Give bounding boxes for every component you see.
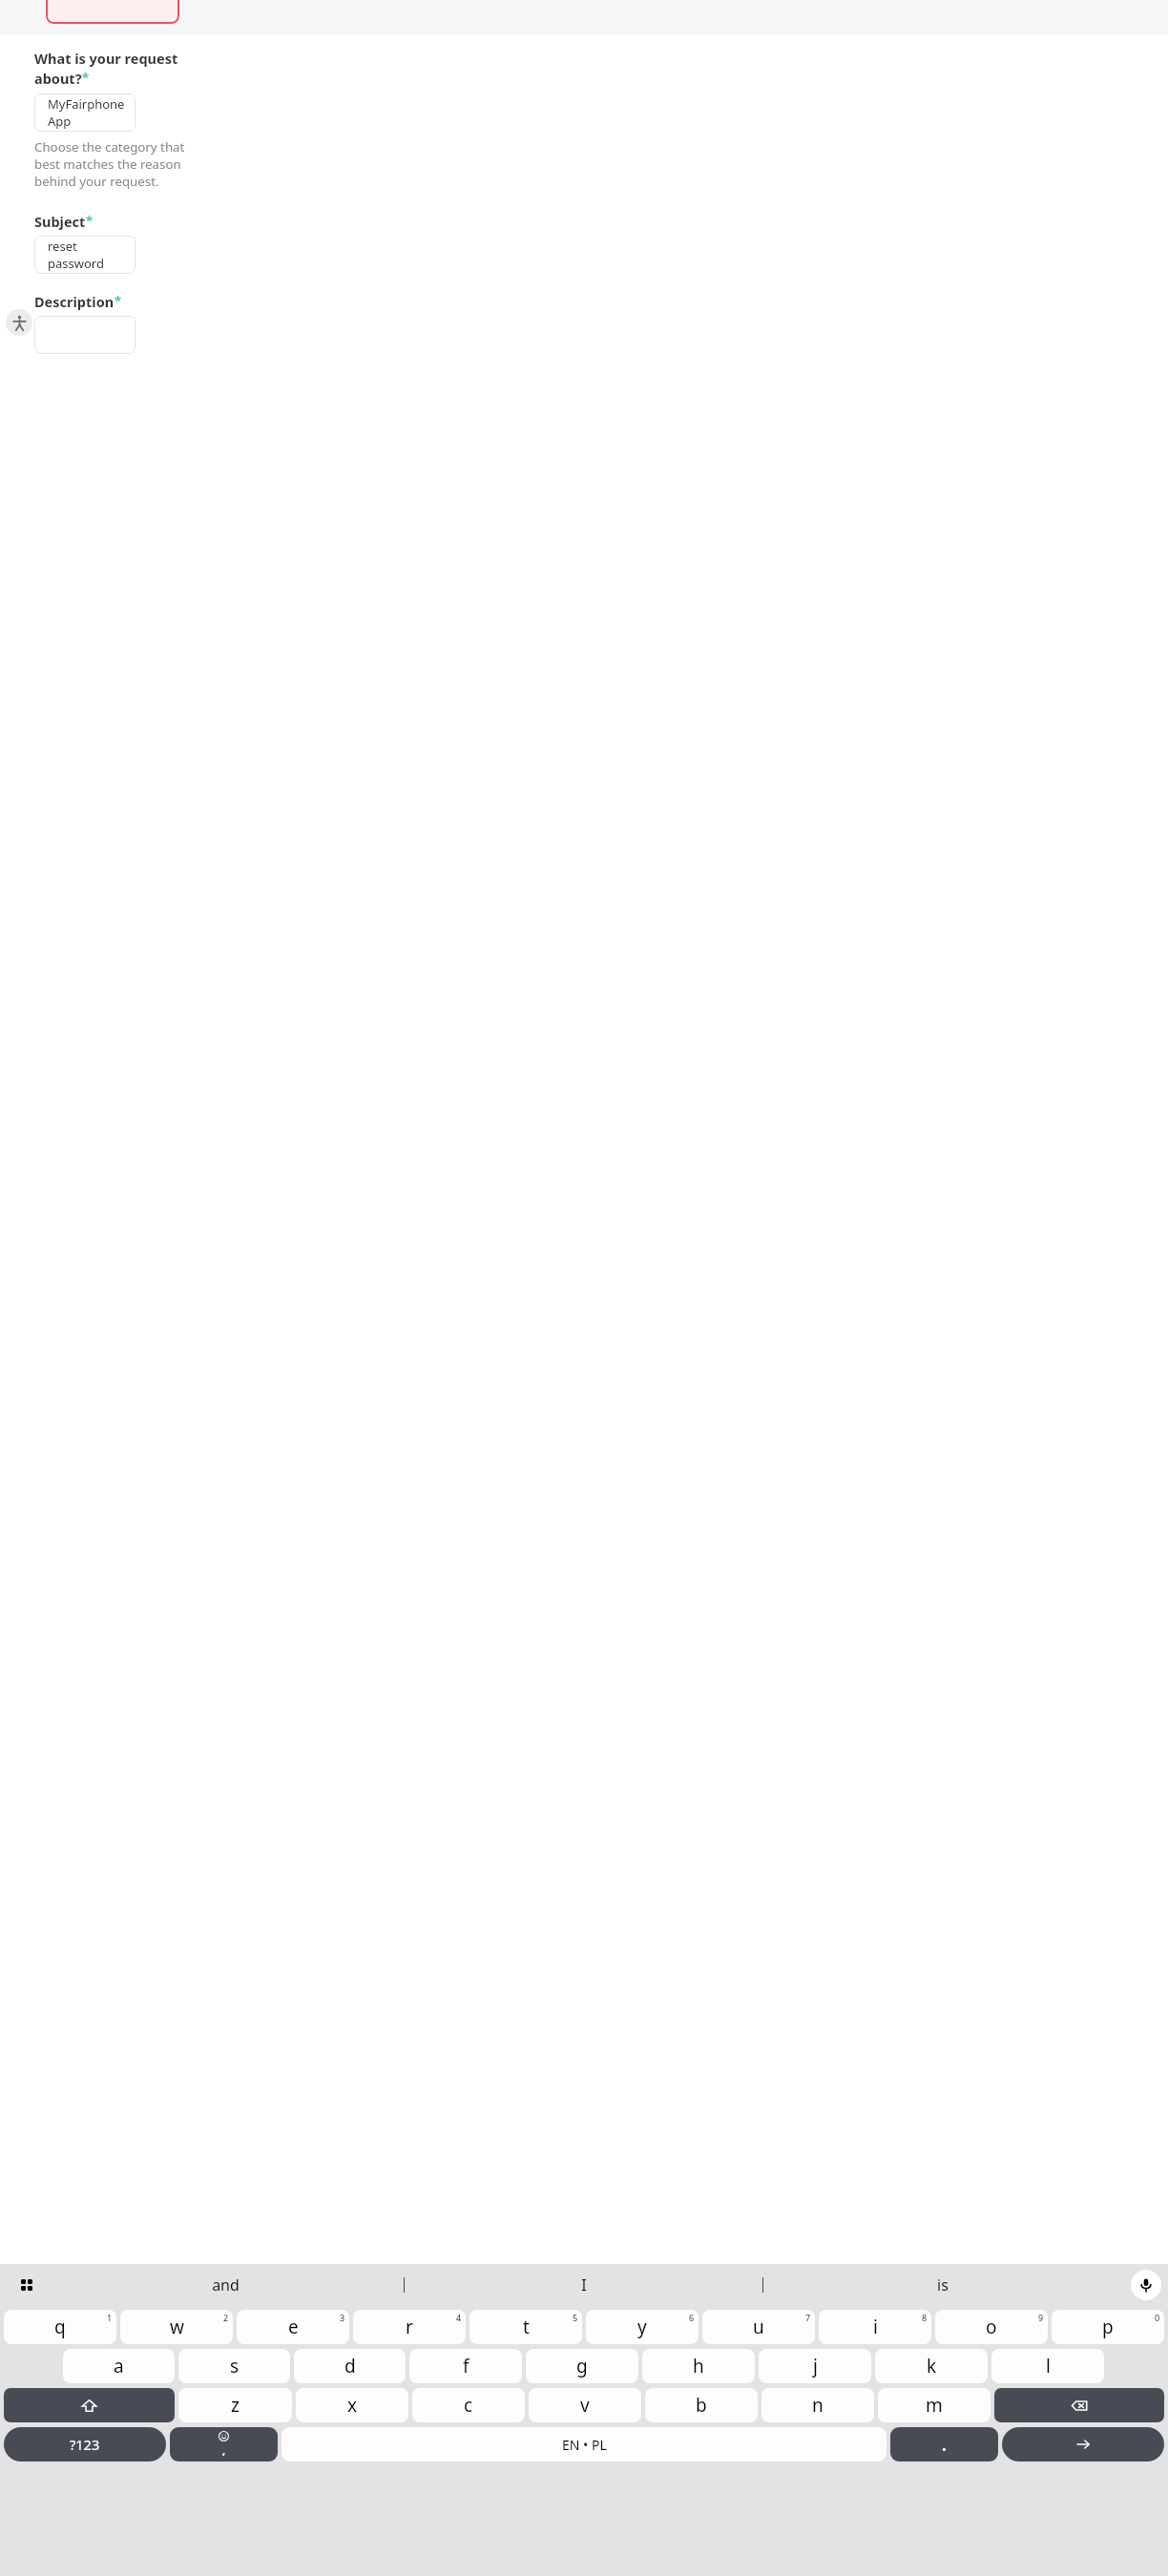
- staticText: s: [230, 2354, 240, 2379]
- staticText: 8: [922, 2312, 928, 2323]
- button[interactable]: is: [763, 2264, 1121, 2305]
- button[interactable]: Emoji: [170, 2427, 278, 2462]
- staticText: m: [926, 2393, 943, 2418]
- button[interactable]: g: [526, 2349, 638, 2383]
- button[interactable]: Period: [890, 2427, 998, 2462]
- button[interactable]: ?123: [4, 2427, 166, 2462]
- button[interactable]: [34, 316, 136, 354]
- staticText: 4: [456, 2312, 462, 2323]
- button[interactable]: d: [294, 2349, 406, 2383]
- button[interactable]: Clipboard: [6, 2264, 47, 2305]
- staticText: ?123: [70, 2435, 100, 2454]
- staticText: i: [873, 2315, 878, 2339]
- button[interactable]: v: [529, 2388, 641, 2422]
- button[interactable]: l: [991, 2349, 1104, 2383]
- staticText: MyFairphone App: [48, 95, 136, 130]
- staticText: k: [927, 2354, 937, 2379]
- button[interactable]: Enter: [1002, 2427, 1164, 2462]
- staticText: a: [114, 2354, 124, 2379]
- staticText: 9: [1038, 2312, 1044, 2323]
- staticText: ,: [222, 2443, 226, 2458]
- staticText: 1: [107, 2312, 113, 2323]
- staticText: *: [82, 69, 90, 86]
- staticText: and: [212, 2275, 240, 2296]
- staticText: 7: [805, 2312, 811, 2323]
- button[interactable]: f: [409, 2349, 522, 2383]
- staticText: r: [406, 2315, 413, 2339]
- button[interactable]: n: [761, 2388, 874, 2422]
- staticText: c: [464, 2393, 473, 2418]
- staticText: about?: [34, 69, 82, 88]
- staticText: f: [463, 2354, 469, 2379]
- button[interactable]: m: [878, 2388, 991, 2422]
- staticText: b: [696, 2393, 707, 2418]
- staticText: Description: [34, 292, 115, 311]
- staticText: *: [115, 292, 122, 309]
- button[interactable]: u: [702, 2310, 815, 2344]
- button[interactable]: r: [353, 2310, 466, 2344]
- button[interactable]: reset password: [34, 236, 136, 274]
- staticText: q: [54, 2315, 66, 2339]
- staticText: v: [580, 2393, 590, 2418]
- staticText: w: [170, 2315, 184, 2339]
- button[interactable]: w: [120, 2310, 233, 2344]
- staticText: 0: [1155, 2312, 1160, 2323]
- staticText: 6: [689, 2312, 695, 2323]
- staticText: l: [1046, 2354, 1051, 2379]
- button[interactable]: b: [645, 2388, 758, 2422]
- button[interactable]: j: [759, 2349, 871, 2383]
- staticText: best matches the reason: [34, 156, 181, 173]
- button[interactable]: Voice input: [1131, 2270, 1161, 2300]
- staticText: n: [812, 2393, 824, 2418]
- button[interactable]: p: [1052, 2310, 1164, 2344]
- button[interactable]: Backspace: [994, 2388, 1164, 2422]
- staticText: t: [523, 2315, 530, 2339]
- staticText: h: [693, 2354, 704, 2379]
- button[interactable]: MyFairphone App: [34, 93, 136, 132]
- button[interactable]: x: [296, 2388, 408, 2422]
- staticText: z: [231, 2393, 240, 2418]
- button[interactable]: Accessibility: [6, 309, 32, 336]
- staticText: What is your request: [34, 49, 178, 68]
- button[interactable]: i: [819, 2310, 931, 2344]
- staticText: behind your request.: [34, 173, 159, 190]
- button[interactable]: h: [642, 2349, 755, 2383]
- staticText: y: [637, 2315, 647, 2339]
- staticText: j: [813, 2354, 818, 2379]
- staticText: EN • PL: [562, 2436, 607, 2454]
- staticText: g: [576, 2354, 588, 2379]
- button[interactable]: y: [586, 2310, 699, 2344]
- staticText: e: [288, 2315, 299, 2339]
- button[interactable]: c: [412, 2388, 525, 2422]
- staticText: I: [581, 2275, 587, 2296]
- staticText: d: [344, 2354, 356, 2379]
- button[interactable]: e: [237, 2310, 349, 2344]
- staticText: Choose the category that: [34, 138, 185, 156]
- button[interactable]: q: [4, 2310, 116, 2344]
- button[interactable]: z: [178, 2388, 292, 2422]
- staticText: x: [347, 2393, 358, 2418]
- staticText: u: [753, 2315, 764, 2339]
- staticText: 2: [223, 2312, 229, 2323]
- staticText: *: [86, 212, 94, 229]
- staticText: Subject: [34, 212, 86, 231]
- button[interactable]: Shift: [4, 2388, 175, 2422]
- staticText: 3: [340, 2312, 345, 2323]
- button[interactable]: I: [405, 2264, 762, 2305]
- button[interactable]: k: [875, 2349, 988, 2383]
- button[interactable]: t: [469, 2310, 582, 2344]
- button[interactable]: a: [63, 2349, 175, 2383]
- staticText: reset password: [48, 238, 136, 272]
- button[interactable]: o: [935, 2310, 1048, 2344]
- staticText: .: [942, 2434, 947, 2456]
- staticText: o: [986, 2315, 997, 2339]
- button[interactable]: EN • PL: [282, 2427, 886, 2462]
- staticText: 5: [573, 2312, 578, 2323]
- staticText: is: [937, 2275, 949, 2296]
- button[interactable]: and: [47, 2264, 404, 2305]
- staticText: p: [1102, 2315, 1114, 2339]
- button[interactable]: s: [178, 2349, 290, 2383]
